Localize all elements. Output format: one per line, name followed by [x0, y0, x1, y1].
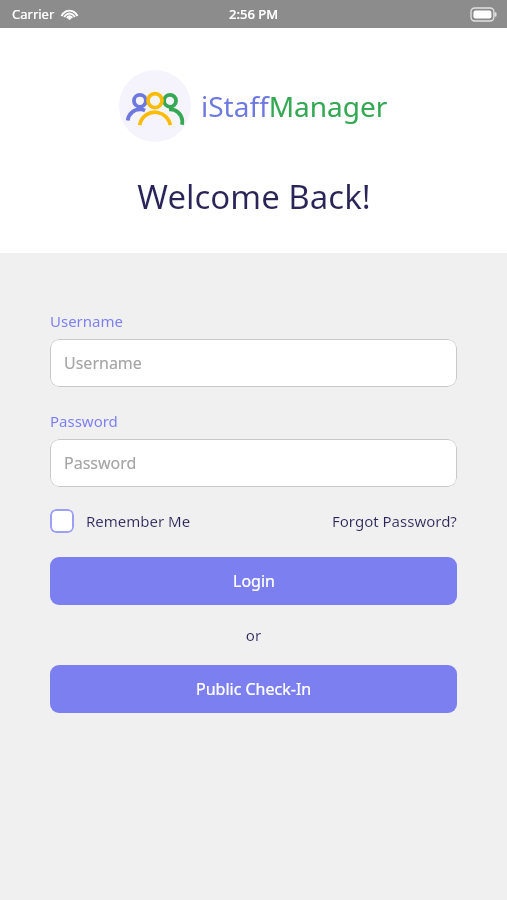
button[interactable]: Password — [50, 439, 457, 487]
staticText: Password — [50, 411, 118, 431]
staticText: iStaffManager — [201, 87, 388, 125]
button[interactable]: Public Check-In — [50, 665, 457, 713]
staticText: Password — [64, 452, 137, 474]
button[interactable]: Remember Me — [50, 509, 197, 533]
button[interactable]: Forgot Password? — [332, 511, 457, 531]
staticText: 2:56 PM — [229, 5, 279, 23]
staticText: or — [50, 625, 457, 645]
button[interactable]: Login — [50, 557, 457, 605]
staticText: Login — [233, 570, 275, 592]
staticText: Remember Me — [86, 511, 191, 531]
staticText: Carrier — [12, 5, 55, 23]
button[interactable]: Username — [50, 339, 457, 387]
staticText: Welcome Back! — [137, 174, 371, 219]
staticText: Public Check-In — [196, 678, 312, 700]
staticText: Username — [50, 311, 123, 331]
staticText: Username — [64, 352, 142, 374]
